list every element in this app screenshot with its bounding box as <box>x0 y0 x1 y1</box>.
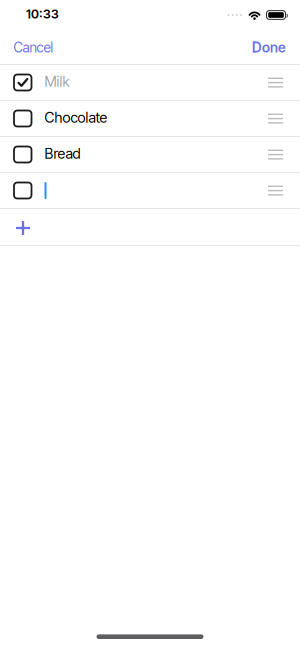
staticText: Cancel <box>13 39 53 56</box>
staticText: Done <box>252 39 286 56</box>
button[interactable]: Reorder <box>268 65 300 100</box>
button[interactable]: Cancel <box>0 39 53 56</box>
button[interactable]: Check item <box>0 173 31 208</box>
button[interactable]: Check Chocolate <box>0 101 31 136</box>
button[interactable]: Uncheck Milk <box>0 65 31 100</box>
button[interactable]: Done <box>252 39 300 56</box>
staticText: 10:33 <box>26 6 59 22</box>
button[interactable]: Chocolate <box>44 101 268 136</box>
staticText: Bread <box>44 145 80 162</box>
button[interactable]: Reorder <box>268 101 300 136</box>
staticText: Milk <box>44 73 69 90</box>
button[interactable]: Bread <box>44 137 268 172</box>
button[interactable]: Milk <box>44 65 268 100</box>
staticText: Chocolate <box>44 109 107 126</box>
button[interactable]: Check Bread <box>0 137 31 172</box>
button[interactable]: Add item <box>0 209 300 245</box>
button[interactable]: New item <box>44 173 268 208</box>
button[interactable]: Reorder <box>268 173 300 208</box>
button[interactable]: Reorder <box>268 137 300 172</box>
